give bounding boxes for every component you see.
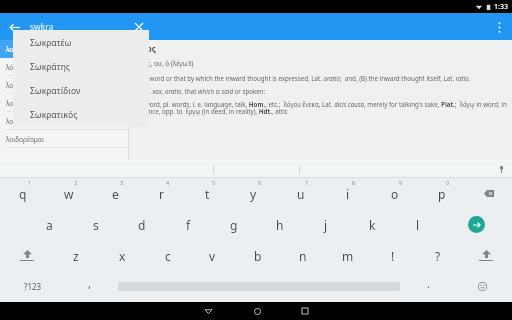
button[interactable]: Emoji xyxy=(452,271,512,302)
staticText: , xyxy=(88,276,91,291)
staticText: d xyxy=(138,217,146,233)
button[interactable]: Search xyxy=(441,209,512,240)
staticText: f xyxy=(186,217,191,233)
button[interactable]: h xyxy=(257,209,303,240)
button[interactable]: m xyxy=(325,240,370,271)
button[interactable]: λόγιον xyxy=(0,58,128,76)
button[interactable]: Σωκράτης xyxy=(13,55,149,79)
button[interactable]: Shift xyxy=(0,240,53,271)
staticText: I. the word or that by which the inward … xyxy=(133,74,471,82)
staticText: λόγος, ου, ὁ (λέγω3) xyxy=(133,59,194,68)
button[interactable]: b xyxy=(235,240,280,271)
staticText: r xyxy=(159,186,164,202)
button[interactable]: ?123 xyxy=(0,271,65,302)
staticText: p xyxy=(438,186,446,202)
button[interactable]: , xyxy=(65,271,113,302)
staticText: h xyxy=(276,217,284,233)
staticText: t xyxy=(205,186,210,202)
button[interactable]: λοιδορέομαι xyxy=(0,130,128,148)
staticText: v xyxy=(209,248,216,264)
staticText: w xyxy=(64,186,74,202)
staticText: Σωκρατέω xyxy=(30,37,72,49)
button[interactable]: x xyxy=(99,240,145,271)
staticText: λογικός xyxy=(6,45,30,54)
staticText: 2 xyxy=(74,179,78,186)
button[interactable]: More options xyxy=(488,16,510,38)
button[interactable]: z xyxy=(53,240,99,271)
button[interactable]: . xyxy=(404,271,452,302)
button[interactable]: v xyxy=(190,240,235,271)
button[interactable]: n xyxy=(280,240,325,271)
staticText: z xyxy=(73,248,79,264)
staticText: ! xyxy=(391,248,395,264)
staticText: λοιδορέομαι xyxy=(6,135,45,144)
button[interactable]: λογισμός xyxy=(0,76,128,94)
button[interactable]: q xyxy=(0,178,46,209)
button[interactable]: w xyxy=(46,178,92,209)
staticText: λόγος xyxy=(133,43,156,54)
staticText: λογιστής xyxy=(6,99,33,108)
staticText: a xyxy=(46,217,53,233)
staticText: y xyxy=(250,186,257,202)
staticText: ? xyxy=(435,248,441,264)
staticText: 1:33 xyxy=(494,2,508,12)
button[interactable]: Σωκρατίδιον xyxy=(13,79,149,103)
button[interactable]: Shift xyxy=(460,240,512,271)
staticText: x xyxy=(119,248,126,264)
button[interactable]: d xyxy=(119,209,165,240)
staticText: A. Lat. vox, oratio, that which is said … xyxy=(133,87,266,95)
staticText: 1. a word, pl. words, i. e. language, ta… xyxy=(133,100,509,116)
button[interactable]: g xyxy=(211,209,257,240)
button[interactable]: r xyxy=(138,178,184,209)
button[interactable]: f xyxy=(165,209,211,240)
staticText: 7 xyxy=(305,179,309,186)
button[interactable]: k xyxy=(349,209,395,240)
button[interactable]: s xyxy=(73,209,119,240)
button[interactable]: Back xyxy=(201,304,215,318)
staticText: u xyxy=(297,186,305,202)
staticText: q xyxy=(19,186,27,202)
staticText: 8 xyxy=(352,179,356,186)
staticText: o xyxy=(391,186,399,202)
button[interactable]: λογιστής xyxy=(0,94,128,112)
staticText: e xyxy=(112,186,119,202)
staticText: Σωκρατικός xyxy=(30,109,78,121)
button[interactable]: i xyxy=(324,178,371,209)
button[interactable]: j xyxy=(303,209,349,240)
button[interactable]: ? xyxy=(415,240,460,271)
staticText: 1 xyxy=(28,179,32,186)
button[interactable]: p xyxy=(418,178,465,209)
button[interactable]: ! xyxy=(370,240,415,271)
button[interactable]: Recents xyxy=(298,304,312,318)
button[interactable]: Voice input xyxy=(494,162,508,176)
staticText: g xyxy=(230,217,238,233)
button[interactable]: Backspace xyxy=(465,178,512,209)
button[interactable]: Back xyxy=(4,17,24,37)
staticText: 4 xyxy=(166,179,170,186)
button[interactable]: Clear xyxy=(129,17,149,37)
button[interactable]: Space xyxy=(113,271,404,302)
button[interactable]: Home xyxy=(250,304,264,318)
staticText: Σωκράτης xyxy=(30,61,70,73)
button[interactable]: o xyxy=(371,178,418,209)
button[interactable]: λογικός xyxy=(0,40,128,58)
button[interactable]: e xyxy=(92,178,138,209)
button[interactable]: c xyxy=(145,240,190,271)
staticText: . xyxy=(427,276,430,291)
staticText: 5 xyxy=(212,179,216,186)
button[interactable]: l xyxy=(395,209,441,240)
staticText: m xyxy=(342,248,354,264)
button[interactable]: t xyxy=(184,178,230,209)
button[interactable]: y xyxy=(230,178,277,209)
button[interactable]: u xyxy=(277,178,324,209)
staticText: 0 xyxy=(446,179,450,186)
staticText: k xyxy=(369,217,376,233)
staticText: i xyxy=(346,186,350,202)
button[interactable]: Σωκρατέω xyxy=(13,30,149,55)
staticText: l xyxy=(416,217,420,233)
staticText: ?123 xyxy=(24,281,42,292)
button[interactable]: λογχοφόρος xyxy=(0,112,128,130)
button[interactable]: a xyxy=(26,209,73,240)
button[interactable]: Σωκρατικός xyxy=(13,103,149,127)
staticText: j xyxy=(324,217,328,233)
